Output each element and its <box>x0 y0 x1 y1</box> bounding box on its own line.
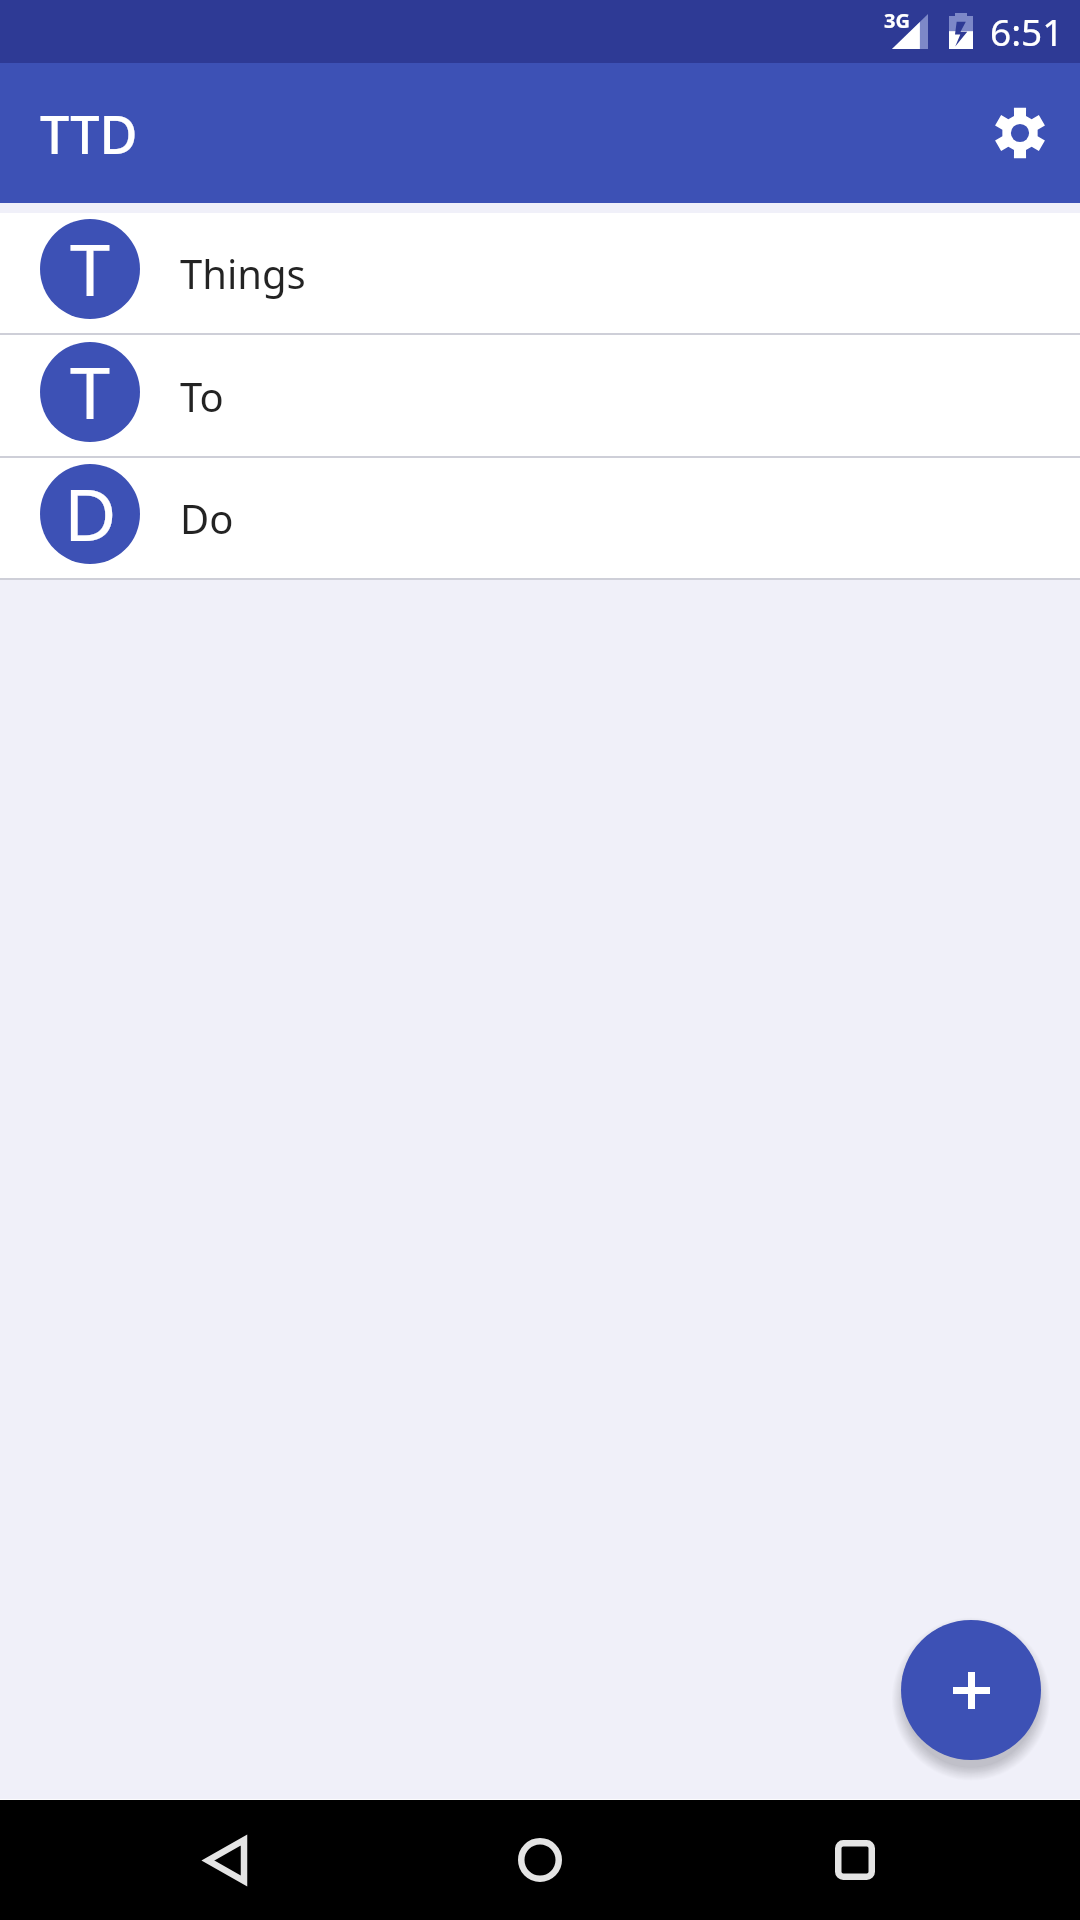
staticText: T <box>70 219 111 317</box>
staticText: 6:51 <box>990 6 1064 56</box>
staticText: 3G <box>884 7 910 34</box>
button[interactable]: Add <box>901 1620 1041 1760</box>
staticText: TTD <box>40 98 138 169</box>
button[interactable]: T <box>0 335 1080 456</box>
staticText: Things <box>180 246 306 300</box>
staticText: D <box>64 464 117 562</box>
button[interactable]: Settings <box>972 85 1068 181</box>
staticText: Do <box>180 491 234 545</box>
button[interactable]: Recents <box>795 1800 915 1920</box>
button[interactable]: Home <box>480 1800 600 1920</box>
button[interactable]: Back <box>166 1800 286 1920</box>
staticText: T <box>70 342 111 440</box>
button[interactable]: D <box>0 458 1080 578</box>
staticText: To <box>180 369 224 423</box>
button[interactable]: T <box>0 213 1080 333</box>
